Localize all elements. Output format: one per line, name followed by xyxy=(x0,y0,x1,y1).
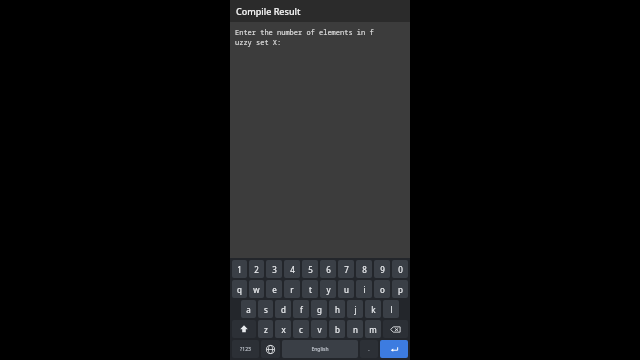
staticText: 4 xyxy=(290,264,295,275)
staticText: 9 xyxy=(380,264,385,275)
button[interactable]: 5 xyxy=(302,260,318,278)
button[interactable]: Enter xyxy=(380,340,408,358)
staticText: q xyxy=(237,284,242,295)
button[interactable]: x xyxy=(275,320,291,338)
button[interactable]: 7 xyxy=(338,260,354,278)
button[interactable]: v xyxy=(311,320,327,338)
staticText: . xyxy=(368,346,370,353)
staticText: ?123 xyxy=(240,346,251,353)
button[interactable]: m xyxy=(365,320,381,338)
button[interactable]: . xyxy=(360,340,378,358)
staticText: m xyxy=(369,324,377,335)
staticText: c xyxy=(299,324,303,335)
button[interactable]: j xyxy=(347,300,363,318)
staticText: uzzy set X: xyxy=(235,38,282,48)
staticText: r xyxy=(290,284,294,295)
button[interactable]: 8 xyxy=(356,260,372,278)
button[interactable]: f xyxy=(293,300,309,318)
button[interactable]: ?123 xyxy=(232,340,259,358)
staticText: b xyxy=(335,324,340,335)
button[interactable]: b xyxy=(329,320,345,338)
staticText: 1 xyxy=(237,264,242,275)
button[interactable]: p xyxy=(392,280,408,298)
staticText: l xyxy=(390,304,393,315)
staticText: p xyxy=(398,284,403,295)
button[interactable]: s xyxy=(258,300,273,318)
staticText: u xyxy=(344,284,349,295)
button[interactable]: English xyxy=(282,340,358,358)
staticText: 7 xyxy=(344,264,349,275)
staticText: f xyxy=(300,304,303,315)
button[interactable]: 6 xyxy=(320,260,336,278)
staticText: y xyxy=(326,284,331,295)
staticText: 3 xyxy=(272,264,277,275)
staticText: k xyxy=(371,304,376,315)
button[interactable]: k xyxy=(365,300,381,318)
button[interactable]: w xyxy=(249,280,264,298)
staticText: n xyxy=(353,324,358,335)
button[interactable]: 0 xyxy=(392,260,408,278)
staticText: Enter the number of elements in f xyxy=(235,28,374,38)
staticText: d xyxy=(281,304,286,315)
staticText: 2 xyxy=(254,264,259,275)
button[interactable]: 4 xyxy=(284,260,300,278)
staticText: a xyxy=(246,304,251,315)
button[interactable]: Change language xyxy=(261,340,280,358)
button[interactable]: n xyxy=(347,320,363,338)
staticText: Compile Result xyxy=(236,5,301,17)
button[interactable]: c xyxy=(293,320,309,338)
staticText: s xyxy=(264,304,268,315)
button[interactable]: z xyxy=(258,320,273,338)
button[interactable]: o xyxy=(374,280,390,298)
button[interactable]: 1 xyxy=(232,260,247,278)
staticText: x xyxy=(281,324,286,335)
staticText: v xyxy=(317,324,322,335)
staticText: 6 xyxy=(326,264,331,275)
staticText: h xyxy=(335,304,340,315)
staticText: English xyxy=(311,346,329,353)
staticText: o xyxy=(380,284,385,295)
button[interactable]: Shift xyxy=(232,320,256,338)
staticText: 5 xyxy=(308,264,313,275)
button[interactable]: e xyxy=(266,280,282,298)
staticText: 8 xyxy=(362,264,367,275)
button[interactable]: i xyxy=(356,280,372,298)
staticText: g xyxy=(317,304,322,315)
button[interactable]: g xyxy=(311,300,327,318)
button[interactable]: d xyxy=(275,300,291,318)
staticText: z xyxy=(264,324,268,335)
button[interactable]: u xyxy=(338,280,354,298)
button[interactable]: 3 xyxy=(266,260,282,278)
button[interactable]: Compile Result xyxy=(230,0,410,22)
staticText: 0 xyxy=(398,264,403,275)
staticText: e xyxy=(272,284,277,295)
button[interactable]: y xyxy=(320,280,336,298)
button[interactable]: 9 xyxy=(374,260,390,278)
button[interactable]: r xyxy=(284,280,300,298)
button[interactable]: t xyxy=(302,280,318,298)
button[interactable]: l xyxy=(383,300,399,318)
button[interactable]: Backspace xyxy=(383,320,408,338)
staticText: t xyxy=(309,284,312,295)
button[interactable]: 2 xyxy=(249,260,264,278)
staticText: w xyxy=(253,284,260,295)
staticText: j xyxy=(354,304,357,315)
staticText: i xyxy=(363,284,366,295)
button[interactable]: q xyxy=(232,280,247,298)
button[interactable]: h xyxy=(329,300,345,318)
button[interactable]: a xyxy=(241,300,256,318)
